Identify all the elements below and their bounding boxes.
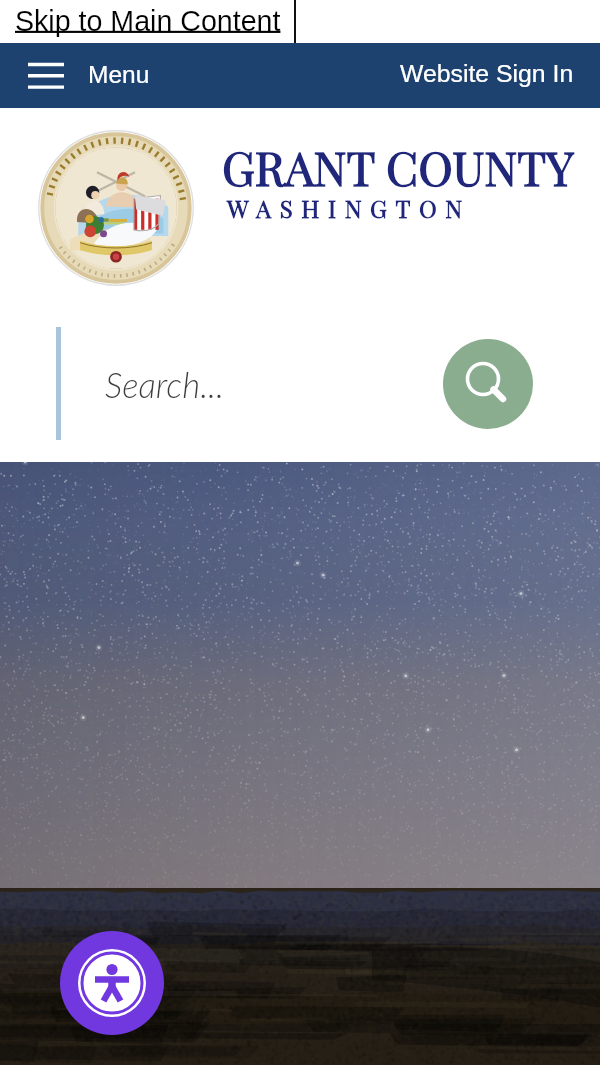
- staticText: Menu: [88, 61, 150, 88]
- button[interactable]: Search: [443, 339, 533, 429]
- button[interactable]: GRANT COUNTY: [0, 108, 600, 308]
- staticText: Website Sign In: [400, 60, 574, 88]
- button[interactable]: Skip to Main Content: [0, 0, 295, 43]
- staticText: Skip to Main Content: [15, 5, 281, 37]
- staticText: Search...: [105, 364, 225, 406]
- button[interactable]: Website Sign In: [330, 43, 600, 108]
- staticText: WASHINGTON: [227, 192, 471, 224]
- button[interactable]: Menu: [0, 43, 600, 108]
- staticText: GRANT COUNTY: [222, 135, 574, 197]
- button[interactable]: Accessibility options: [60, 931, 164, 1035]
